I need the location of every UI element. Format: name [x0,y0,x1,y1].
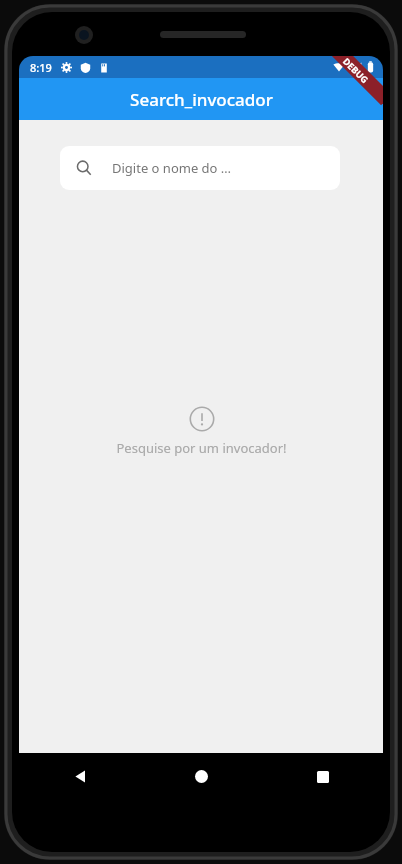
button[interactable]: Home [141,753,262,800]
staticText: Search_invocador [130,88,273,111]
button[interactable]: Digite o nome do … [60,146,340,190]
staticText: Pesquise por um invocador! [116,439,287,457]
staticText: DEBUG [341,56,371,85]
staticText: 8:19 [30,60,52,75]
staticText: Digite o nome do … [112,159,232,177]
button[interactable]: Recents [262,753,383,800]
button[interactable]: Back [19,753,141,800]
